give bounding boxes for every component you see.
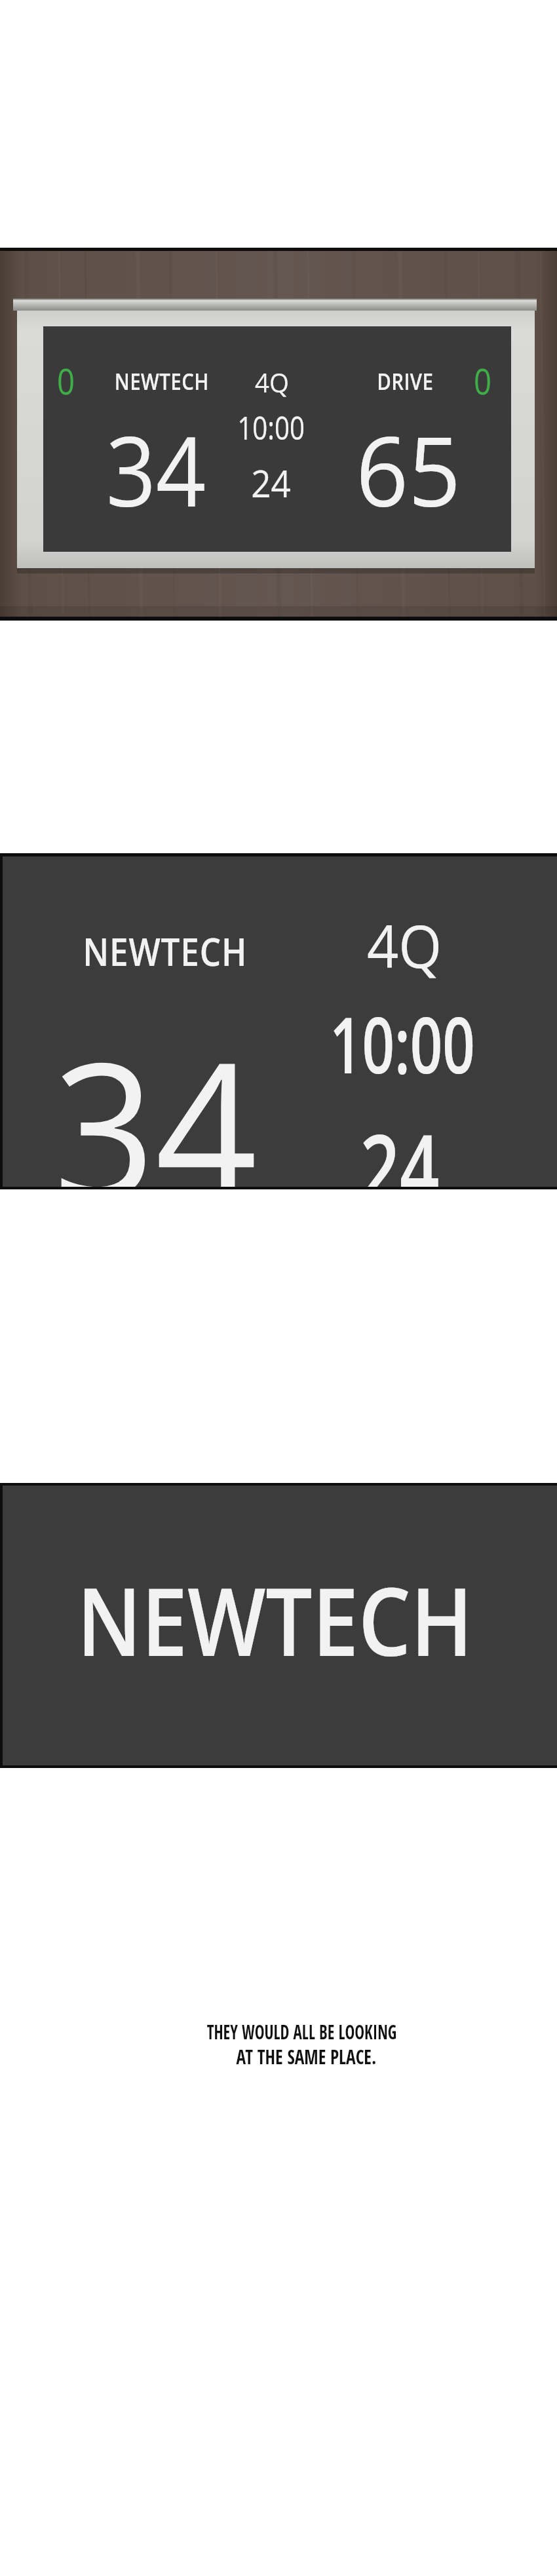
staticText: THEY WOULD ALL BE LOOKING — [207, 2018, 397, 2045]
staticText: 34 — [106, 404, 207, 535]
staticText: NEWTECH — [77, 1555, 473, 1683]
staticText: 10:00 — [330, 991, 475, 1096]
staticText: 24 — [251, 457, 291, 509]
staticText: AT THE SAME PLACE. — [236, 2043, 376, 2070]
staticText: DRIVE — [377, 366, 434, 397]
button[interactable]: 0 — [0, 248, 557, 621]
staticText: 65 — [356, 404, 461, 535]
staticText: NEWTECH — [83, 925, 248, 977]
staticText: 24 — [360, 1103, 439, 1187]
staticText: NEWTECH — [115, 366, 209, 397]
button[interactable]: NEWTECH — [0, 1483, 557, 1768]
staticText: 0 — [57, 356, 75, 405]
staticText: 34 — [53, 998, 257, 1187]
staticText: 0 — [474, 356, 491, 405]
button[interactable]: NEWTECH — [0, 853, 557, 1189]
staticText: 4Q — [255, 364, 290, 400]
staticText: 10:00 — [237, 406, 305, 450]
staticText: 4Q — [367, 906, 442, 985]
